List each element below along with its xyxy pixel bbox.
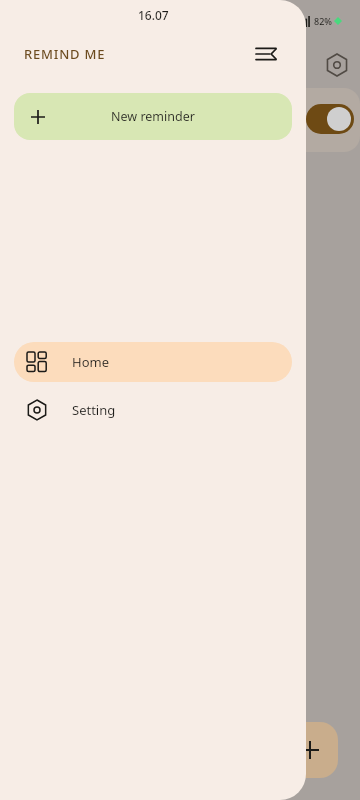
staticText: Setting [72, 401, 116, 419]
staticText: 82% [314, 15, 332, 27]
button[interactable]: Toggle [306, 104, 354, 134]
staticText: Home [72, 353, 109, 371]
button[interactable]: Add [282, 722, 338, 778]
staticText: REMIND ME [24, 45, 106, 63]
staticText: 16.07 [138, 7, 169, 23]
button[interactable]: New reminder [14, 93, 292, 140]
button[interactable]: Setting [14, 390, 292, 430]
button[interactable]: Close menu [250, 38, 282, 70]
staticText: New reminder [111, 108, 195, 125]
button[interactable]: Settings [324, 52, 350, 78]
button[interactable]: Home [14, 342, 292, 382]
